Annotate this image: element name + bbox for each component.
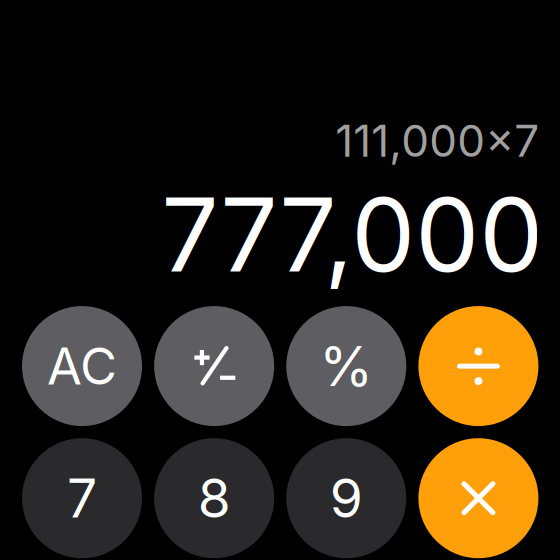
button[interactable]: Plus Minus <box>154 306 274 426</box>
staticText: 9 <box>330 466 363 530</box>
button[interactable]: Divide <box>418 306 538 426</box>
button[interactable]: 7 <box>22 438 142 558</box>
button[interactable]: 8 <box>154 438 274 558</box>
button[interactable]: AC <box>22 306 142 426</box>
staticText: 777,000 <box>161 173 543 296</box>
staticText: % <box>319 333 373 399</box>
staticText: 111,000×7 <box>335 114 539 167</box>
staticText: 8 <box>198 466 231 530</box>
staticText: AC <box>47 335 117 397</box>
staticText: 7 <box>67 466 97 530</box>
button[interactable]: % <box>286 306 406 426</box>
button[interactable]: Multiply <box>418 438 538 558</box>
button[interactable]: 9 <box>286 438 406 558</box>
